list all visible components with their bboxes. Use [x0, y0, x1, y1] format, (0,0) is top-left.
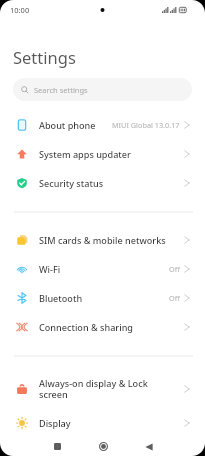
- button[interactable]: About phone: [0, 110, 205, 139]
- button[interactable]: Display: [0, 408, 205, 437]
- button[interactable]: Wi-Fi: [0, 254, 205, 283]
- button[interactable]: Recent apps: [34, 437, 80, 456]
- button[interactable]: SIM cards & mobile networks: [0, 225, 205, 254]
- staticText: About phone: [39, 119, 96, 131]
- staticText: 10:00: [10, 5, 30, 15]
- staticText: Security status: [39, 177, 104, 189]
- staticText: Search settings: [34, 85, 88, 95]
- button[interactable]: Search settings: [13, 78, 192, 101]
- staticText: Always-on display & Lock screen: [39, 377, 167, 401]
- button[interactable]: Bluetooth: [0, 283, 205, 312]
- staticText: System apps updater: [39, 148, 131, 160]
- button[interactable]: Connection & sharing: [0, 312, 205, 341]
- staticText: Off: [169, 293, 180, 303]
- button[interactable]: Home: [80, 437, 126, 456]
- staticText: Bluetooth: [39, 292, 83, 304]
- staticText: SIM cards & mobile networks: [39, 234, 166, 246]
- staticText: Settings: [13, 46, 76, 68]
- button[interactable]: Back: [126, 437, 172, 456]
- staticText: Off: [169, 264, 180, 274]
- staticText: MIUI Global 13.0.17: [112, 120, 180, 130]
- button[interactable]: Always-on display & Lock screen: [0, 369, 205, 408]
- button[interactable]: System apps updater: [0, 139, 205, 168]
- staticText: Display: [39, 417, 71, 429]
- button[interactable]: Security status: [0, 168, 205, 197]
- staticText: Connection & sharing: [39, 321, 134, 333]
- staticText: Wi-Fi: [39, 263, 61, 275]
